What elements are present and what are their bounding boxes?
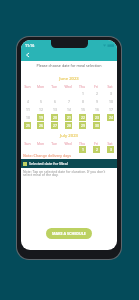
staticText: Sun xyxy=(21,84,34,89)
button[interactable]: 1 xyxy=(79,90,86,97)
staticText: 23 xyxy=(95,115,99,120)
staticText: 12 xyxy=(39,107,43,112)
staticText: Please choose date for meal selection xyxy=(21,63,117,68)
staticText: 2 xyxy=(96,91,98,96)
staticText: Sun xyxy=(21,141,34,146)
button[interactable]: 30 xyxy=(93,122,100,129)
button[interactable]: 2 xyxy=(93,90,100,97)
button[interactable]: 11 xyxy=(24,106,31,113)
button[interactable]: 25 xyxy=(24,122,31,129)
button[interactable]: 17 xyxy=(107,106,114,113)
staticText: 6 xyxy=(54,99,56,104)
staticText: 22 xyxy=(81,115,85,120)
staticText: 3 xyxy=(110,147,112,152)
button[interactable]: Back xyxy=(23,51,31,59)
staticText: 2 xyxy=(96,147,98,152)
button[interactable]: 26 xyxy=(37,122,44,129)
staticText: 5 xyxy=(40,99,42,104)
staticText: MAKE A SCHEDULE xyxy=(52,231,86,236)
staticText: 21 xyxy=(67,115,71,120)
staticText: 11:16 xyxy=(25,43,35,48)
staticText: 29 xyxy=(81,123,85,128)
staticText: 17 xyxy=(109,107,113,112)
staticText: 20 xyxy=(53,115,57,120)
button[interactable]: 7 xyxy=(65,98,72,105)
staticText: 4 xyxy=(27,99,29,104)
staticText: Note: Tap on selected date for duration.… xyxy=(23,169,115,177)
button[interactable]: 8 xyxy=(79,98,86,105)
button[interactable]: 4 xyxy=(24,98,31,105)
staticText: Fri xyxy=(89,141,103,146)
staticText: 7 xyxy=(68,99,70,104)
staticText: 8 xyxy=(82,99,84,104)
staticText: Wed xyxy=(61,84,75,89)
button[interactable]: 29 xyxy=(79,122,86,129)
staticText: Mon xyxy=(34,141,47,146)
staticText: Fri xyxy=(89,84,103,89)
button[interactable]: 24 xyxy=(107,114,114,121)
staticText: 3 xyxy=(110,91,112,96)
button[interactable]: 9 xyxy=(93,98,100,105)
button[interactable]: 6 xyxy=(51,98,58,105)
staticText: Tue xyxy=(47,84,61,89)
button[interactable]: 22 xyxy=(79,114,86,121)
button[interactable]: 21 xyxy=(65,114,72,121)
staticText: 13 xyxy=(53,107,57,112)
button[interactable]: 18 xyxy=(24,114,31,121)
staticText: 10 xyxy=(109,99,113,104)
button[interactable]: 23 xyxy=(93,114,100,121)
staticText: July 2023 xyxy=(21,133,117,139)
staticText: 16 xyxy=(95,107,99,112)
button[interactable]: 27 xyxy=(51,122,58,129)
button[interactable]: 14 xyxy=(65,106,72,113)
button[interactable]: 12 xyxy=(37,106,44,113)
staticText: 24 xyxy=(109,115,113,120)
staticText: 1 xyxy=(82,147,84,152)
staticText: 28 xyxy=(67,123,71,128)
staticText: 26 xyxy=(39,123,43,128)
staticText: 1 xyxy=(82,91,84,96)
button[interactable]: 1 xyxy=(79,146,86,153)
staticText: Tue xyxy=(47,141,61,146)
staticText: 30 xyxy=(95,123,99,128)
button[interactable]: 28 xyxy=(65,122,72,129)
button[interactable]: 5 xyxy=(37,98,44,105)
button[interactable]: 10 xyxy=(107,98,114,105)
staticText: 19 xyxy=(39,115,43,120)
button[interactable]: 16 xyxy=(93,106,100,113)
staticText: Thu xyxy=(75,84,89,89)
staticText: 27 xyxy=(53,123,57,128)
button[interactable]: 2 xyxy=(93,146,100,153)
staticText: 9 xyxy=(96,99,98,104)
staticText: Selected date for Meal xyxy=(29,161,68,166)
staticText: Mon xyxy=(34,84,47,89)
staticText: 11 xyxy=(26,107,30,112)
staticText: 14 xyxy=(67,107,71,112)
staticText: 25 xyxy=(26,123,30,128)
staticText: June 2023 xyxy=(21,76,117,82)
button[interactable]: 3 xyxy=(107,146,114,153)
button[interactable]: 13 xyxy=(51,106,58,113)
button[interactable]: 15 xyxy=(79,106,86,113)
staticText: 18 xyxy=(26,115,30,120)
button[interactable]: 19 xyxy=(37,114,44,121)
staticText: Thu xyxy=(75,141,89,146)
staticText: 15 xyxy=(81,107,85,112)
button[interactable]: MAKE A SCHEDULE xyxy=(46,228,92,239)
staticText: Sat xyxy=(103,141,117,146)
staticText: Note: Change delivery days xyxy=(23,153,72,158)
staticText: Wed xyxy=(61,141,75,146)
staticText: Sat xyxy=(103,84,117,89)
button[interactable]: 20 xyxy=(51,114,58,121)
button[interactable]: 3 xyxy=(107,90,114,97)
